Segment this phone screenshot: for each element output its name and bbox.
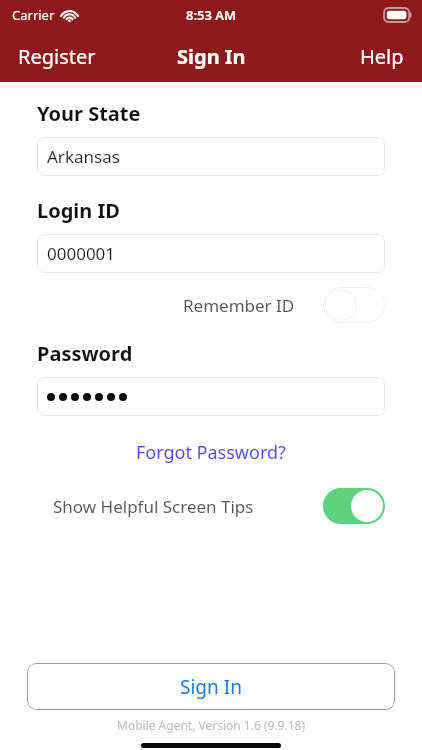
other: Battery full — [384, 8, 412, 22]
staticText: 8:53 AM — [186, 6, 237, 24]
button[interactable]: Show Helpful Screen Tips on — [323, 488, 385, 524]
button[interactable]: Forgot Password? — [126, 436, 296, 469]
staticText: Register — [18, 43, 96, 70]
staticText: Your State — [37, 100, 141, 127]
button[interactable]: Help — [342, 35, 422, 78]
button[interactable] — [37, 377, 385, 416]
button[interactable]: Remember ID off — [323, 287, 385, 323]
staticText: Arkansas — [47, 145, 120, 168]
staticText: 0000001 — [47, 242, 116, 265]
button[interactable]: Register — [0, 35, 114, 78]
button[interactable]: Remember ID — [37, 285, 385, 325]
staticText: Sign In — [180, 674, 242, 700]
staticText: Carrier — [12, 6, 55, 24]
button[interactable]: 0000001 — [37, 234, 385, 273]
staticText: Login ID — [37, 197, 120, 224]
button[interactable]: Show Helpful Screen Tips — [37, 485, 385, 527]
staticText: Forgot Password? — [136, 440, 286, 465]
button[interactable]: Arkansas — [37, 137, 385, 176]
staticText: Help — [360, 43, 404, 70]
staticText: Sign In — [177, 43, 246, 70]
staticText: Remember ID — [183, 294, 295, 317]
staticText: Password — [37, 340, 133, 367]
button[interactable]: Sign In — [27, 663, 395, 710]
other: Wi-Fi signal — [61, 9, 78, 22]
staticText: Show Helpful Screen Tips — [53, 495, 254, 518]
staticText: Mobile Agent, Version 1.6 (9.9.18) — [0, 717, 422, 733]
